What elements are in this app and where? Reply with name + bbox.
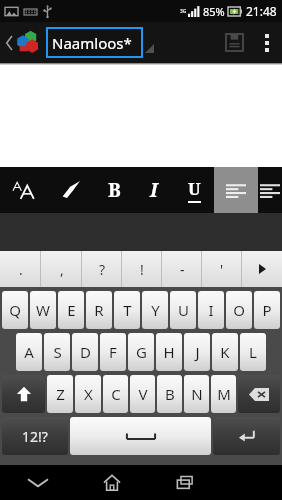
staticText: B <box>165 384 175 404</box>
button[interactable]: . <box>0 251 41 287</box>
staticText: V <box>138 384 148 404</box>
button[interactable]: E <box>58 291 84 329</box>
button[interactable]: H <box>156 333 182 371</box>
button[interactable]: More options <box>252 22 282 63</box>
button[interactable]: - <box>162 251 202 287</box>
button[interactable]: V <box>130 375 155 413</box>
button[interactable]: Font size <box>0 167 48 213</box>
button[interactable]: U <box>170 291 196 329</box>
staticText: 12!? <box>22 427 48 446</box>
staticText: ? <box>99 260 106 279</box>
button[interactable]: X <box>75 375 101 413</box>
staticText: N <box>191 384 203 404</box>
staticText: A <box>24 342 34 362</box>
button[interactable]: ? <box>82 251 122 287</box>
button[interactable]: T <box>114 291 140 329</box>
button[interactable]: C <box>103 375 128 413</box>
button[interactable]: Text color brush <box>48 167 94 213</box>
staticText: U <box>188 177 201 200</box>
staticText: E <box>67 300 76 320</box>
button[interactable]: Align center <box>258 167 282 213</box>
button[interactable]: Align left <box>214 167 258 213</box>
button[interactable]: Recent apps <box>149 465 223 500</box>
button[interactable]: ' <box>202 251 242 287</box>
button[interactable]: Hide keyboard <box>0 465 75 500</box>
button[interactable]: K <box>212 333 238 371</box>
staticText: - <box>180 260 185 279</box>
button[interactable]: J <box>184 333 210 371</box>
button[interactable]: W <box>30 291 56 329</box>
button[interactable]: Home <box>75 465 149 500</box>
staticText: Naamloos* <box>52 33 132 53</box>
staticText: B <box>108 177 121 203</box>
button[interactable]: Enter <box>213 417 280 455</box>
staticText: G <box>136 342 147 362</box>
button[interactable]: S <box>44 333 70 371</box>
staticText: M <box>217 384 231 404</box>
button[interactable]: I <box>198 291 224 329</box>
button[interactable]: Z <box>47 375 73 413</box>
button[interactable]: Save <box>216 22 252 63</box>
button[interactable]: Underline <box>174 167 214 213</box>
button[interactable]: Bold <box>94 167 134 213</box>
staticText: I <box>150 177 158 203</box>
button[interactable]: Backspace <box>238 375 280 413</box>
button[interactable]: Naamloos* <box>46 27 143 58</box>
staticText: ! <box>140 260 144 279</box>
staticText: Q <box>9 300 21 320</box>
staticText: K <box>220 342 230 362</box>
staticText: ' <box>220 260 224 279</box>
staticText: U <box>178 300 189 320</box>
button[interactable]: Q <box>2 291 28 329</box>
staticText: O <box>233 300 245 320</box>
button[interactable]: ! <box>122 251 162 287</box>
staticText: R <box>94 300 104 320</box>
staticText: T <box>123 300 132 320</box>
staticText: C <box>111 384 121 404</box>
staticText: 21:48 <box>246 3 277 19</box>
button[interactable]: More symbols <box>242 251 282 287</box>
staticText: 85% <box>203 4 225 19</box>
button[interactable]: Y <box>142 291 168 329</box>
staticText: . <box>19 260 23 279</box>
staticText: F <box>109 342 117 362</box>
button[interactable]: A <box>16 333 42 371</box>
staticText: D <box>80 342 91 362</box>
staticText: Y <box>151 300 160 320</box>
staticText: S <box>53 342 62 362</box>
button[interactable]: Italic <box>134 167 174 213</box>
staticText: I <box>208 300 214 320</box>
button[interactable]: G <box>128 333 154 371</box>
staticText: 3G <box>180 8 187 15</box>
button[interactable]: 12!? <box>2 417 68 455</box>
button[interactable]: , <box>41 251 82 287</box>
button[interactable]: Up, OfficeSuite Pro <box>0 22 46 63</box>
staticText: P <box>262 300 272 320</box>
button[interactable]: Space <box>70 417 211 455</box>
button[interactable]: R <box>86 291 112 329</box>
button[interactable]: B <box>157 375 182 413</box>
staticText: W <box>36 300 50 320</box>
button[interactable]: O <box>226 291 252 329</box>
staticText: Z <box>56 384 65 404</box>
button[interactable]: D <box>72 333 98 371</box>
button[interactable]: L <box>240 333 266 371</box>
staticText: L <box>249 342 257 362</box>
staticText: H <box>163 342 175 362</box>
button[interactable]: P <box>254 291 280 329</box>
staticText: , <box>60 260 64 279</box>
button[interactable]: Shift <box>2 375 45 413</box>
staticText: X <box>84 384 93 404</box>
button[interactable]: M <box>211 375 236 413</box>
staticText: J <box>195 342 200 362</box>
button[interactable]: F <box>100 333 126 371</box>
button[interactable]: N <box>184 375 209 413</box>
